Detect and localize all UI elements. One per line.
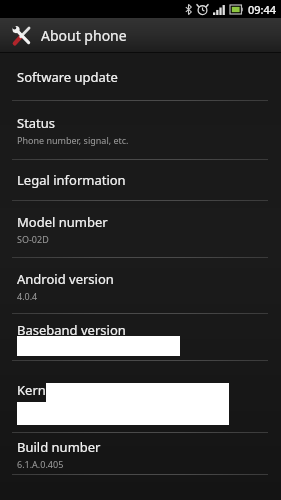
- button[interactable]: Software update: [0, 53, 281, 100]
- staticText: 4.0.4: [17, 290, 38, 302]
- staticText: Status: [17, 114, 56, 132]
- button[interactable]: Baseband version: [0, 314, 281, 360]
- staticText: Model number: [17, 213, 108, 231]
- staticText: Build number: [17, 438, 101, 456]
- staticText: Legal information: [17, 171, 126, 189]
- staticText: Android version: [17, 270, 114, 288]
- staticText: Baseband version: [17, 321, 126, 339]
- button[interactable]: Build number: [0, 433, 281, 474]
- staticText: About phone: [41, 26, 127, 45]
- staticText: Software update: [17, 68, 118, 86]
- staticText: 09:44: [248, 2, 277, 17]
- staticText: 6.1.A.0.405: [17, 458, 64, 470]
- button[interactable]: Model number: [0, 201, 281, 257]
- button[interactable]: Android version: [0, 258, 281, 313]
- staticText: SO-02D: [17, 233, 49, 245]
- staticText: Phone number, signal, etc.: [17, 134, 129, 146]
- staticText: 3.0.8+: [17, 401, 43, 413]
- button[interactable]: Legal information: [0, 160, 281, 200]
- button[interactable]: Kernel version: [0, 361, 281, 432]
- button[interactable]: Status: [0, 101, 281, 159]
- staticText: Kernel version: [17, 381, 105, 399]
